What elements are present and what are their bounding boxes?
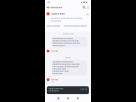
button[interactable]: More options [86,4,91,11]
button[interactable]: Recent apps [77,96,86,102]
button[interactable] [51,61,87,77]
button[interactable]: Back [50,96,59,102]
button[interactable]: Undo [80,88,89,96]
button[interactable]: Back [45,4,51,11]
button[interactable] [51,4,81,11]
button[interactable] [62,24,86,28]
button[interactable] [51,37,87,48]
button[interactable]: Search [81,4,86,11]
button[interactable] [45,24,60,28]
button[interactable]: Home [64,96,73,102]
